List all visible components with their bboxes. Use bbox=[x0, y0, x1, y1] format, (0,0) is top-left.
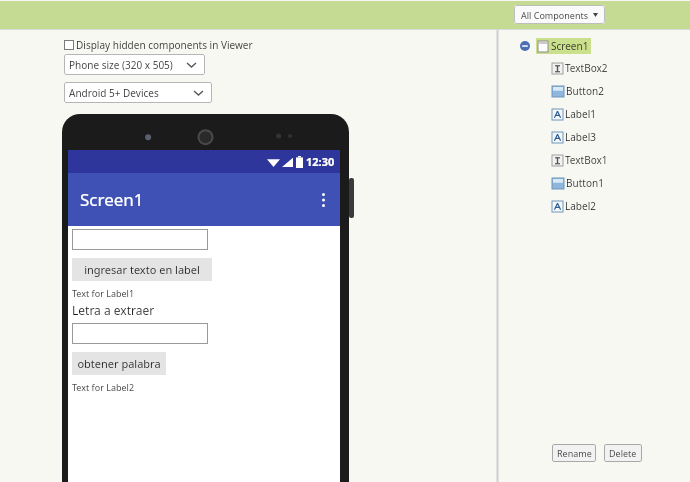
staticText: Button2 bbox=[566, 84, 604, 98]
button[interactable]: Android 5+ Devices bbox=[64, 82, 212, 103]
button[interactable]: TextBox2 bbox=[552, 61, 608, 75]
button[interactable]: Button2 bbox=[552, 84, 604, 98]
staticText: obtener palabra bbox=[77, 356, 161, 371]
button[interactable]: TextBox1 bbox=[552, 153, 608, 167]
staticText: Screen1 bbox=[80, 188, 144, 211]
staticText: Label3 bbox=[565, 130, 596, 144]
staticText: TextBox1 bbox=[565, 153, 608, 167]
button[interactable] bbox=[72, 229, 208, 250]
staticText: Text for Label2 bbox=[72, 381, 135, 393]
staticText: TextBox2 bbox=[565, 61, 608, 75]
staticText: Label1 bbox=[565, 107, 596, 121]
button[interactable] bbox=[72, 323, 208, 344]
staticText: ingresar texto en label bbox=[84, 262, 200, 277]
staticText: Display hidden components in Viewer bbox=[76, 38, 253, 52]
button[interactable]: Delete bbox=[604, 444, 642, 462]
button[interactable]: Phone size (320 x 505) bbox=[64, 54, 205, 75]
other: Collapse bbox=[520, 41, 530, 51]
staticText: Button1 bbox=[566, 176, 604, 190]
staticText: Android 5+ Devices bbox=[69, 86, 159, 100]
staticText: Letra a extraer bbox=[72, 302, 155, 318]
staticText: Screen1 bbox=[551, 39, 589, 53]
staticText: All Components bbox=[521, 9, 589, 21]
staticText: Text for Label1 bbox=[72, 287, 135, 299]
staticText: Delete bbox=[609, 447, 637, 459]
button[interactable]: All Components bbox=[514, 5, 605, 24]
staticText: Rename bbox=[557, 447, 592, 459]
button[interactable]: Label3 bbox=[552, 130, 596, 144]
button[interactable]: Button1 bbox=[552, 176, 604, 190]
button[interactable]: Label1 bbox=[552, 107, 596, 121]
staticText: 12:30 bbox=[306, 154, 335, 169]
button[interactable]: Collapse bbox=[520, 38, 591, 54]
button[interactable]: ingresar texto en label bbox=[72, 258, 212, 281]
button[interactable]: obtener palabra bbox=[72, 352, 166, 375]
button[interactable]: More options bbox=[312, 189, 334, 211]
button[interactable]: Display hidden components in Viewer bbox=[64, 38, 253, 52]
button[interactable]: Label2 bbox=[552, 199, 596, 213]
button[interactable]: Rename bbox=[552, 444, 596, 462]
staticText: Phone size (320 x 505) bbox=[69, 58, 173, 72]
staticText: Label2 bbox=[565, 199, 596, 213]
